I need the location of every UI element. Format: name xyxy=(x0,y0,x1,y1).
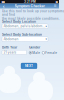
staticText: ‹ xyxy=(3,3,5,9)
button[interactable]: Female xyxy=(42,51,57,55)
button[interactable]: NEXT xyxy=(21,63,37,69)
staticText: Female xyxy=(45,51,57,55)
staticText: Male xyxy=(32,51,40,55)
staticText: the most likely possible conditions. xyxy=(2,17,60,20)
staticText: Birth Year xyxy=(2,45,17,49)
staticText: Symptom Checker xyxy=(14,4,44,8)
button[interactable]: 21 years xyxy=(2,50,26,55)
staticText: ▮▮▮ xyxy=(1,0,4,3)
staticText: Select Body Location xyxy=(2,20,36,23)
staticText: Abdomen, pelvis/abdomen xyxy=(3,24,46,28)
button[interactable]: Menu xyxy=(53,3,58,9)
staticText: Use this tool to look up your symptoms a… xyxy=(2,9,64,16)
staticText: ▮▮ xyxy=(56,0,58,3)
staticText: Gender xyxy=(29,45,40,49)
button[interactable]: Back xyxy=(1,3,6,9)
staticText: NEXT xyxy=(25,64,33,68)
staticText: 21 years xyxy=(3,51,16,54)
button[interactable]: Abdomen xyxy=(2,37,48,41)
button[interactable]: Abdomen, pelvis/abdomen xyxy=(2,24,48,28)
staticText: ▾ xyxy=(46,25,47,28)
staticText: Abdomen xyxy=(3,37,18,41)
staticText: 3:21 PM xyxy=(24,0,36,3)
staticText: ▾ xyxy=(46,37,47,41)
staticText: Select Body Sub-location xyxy=(2,33,42,36)
button[interactable]: Male xyxy=(29,51,40,55)
staticText: ☰ xyxy=(54,4,57,8)
